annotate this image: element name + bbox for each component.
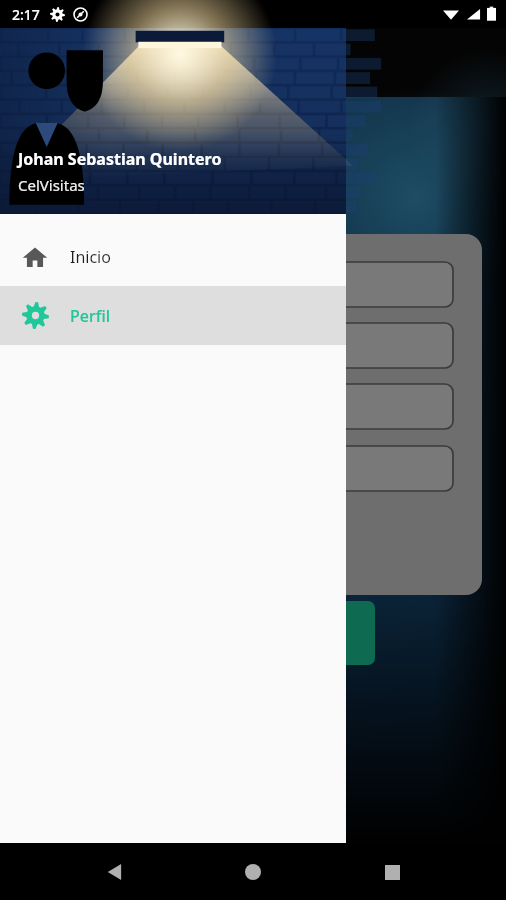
staticText: CelVisitas bbox=[18, 175, 85, 195]
staticText: Johan Sebastian Quintero bbox=[18, 148, 222, 170]
button[interactable]: Home bbox=[229, 848, 277, 896]
button[interactable]: Perfil bbox=[0, 286, 346, 345]
staticText: Inicio bbox=[70, 246, 111, 268]
button[interactable]: Inicio bbox=[0, 227, 346, 286]
button[interactable]: Recent apps bbox=[368, 848, 416, 896]
button[interactable]: Back bbox=[91, 848, 139, 896]
staticText: Perfil bbox=[70, 305, 111, 327]
staticText: 2:17 bbox=[12, 5, 40, 24]
